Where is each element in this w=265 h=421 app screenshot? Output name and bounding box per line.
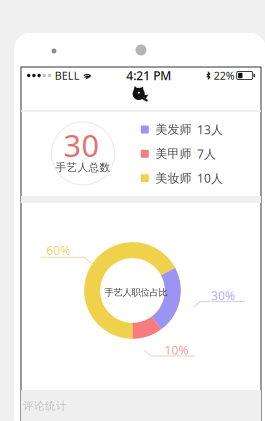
- staticText: 手艺人总数: [55, 161, 110, 174]
- staticText: 30: [63, 125, 99, 165]
- staticText: 13人: [197, 121, 223, 137]
- staticText: 60%: [46, 242, 70, 258]
- staticText: 22%: [214, 68, 235, 83]
- button[interactable]: Logo: [125, 80, 154, 109]
- button[interactable]: 评论统计: [19, 396, 71, 415]
- staticText: 4:21 PM: [126, 67, 171, 83]
- staticText: 美妆师: [155, 171, 191, 185]
- staticText: 30%: [211, 288, 235, 304]
- staticText: BELL: [55, 68, 80, 83]
- staticText: 美发师: [155, 122, 191, 137]
- staticText: 手艺人职位占比: [104, 287, 167, 298]
- staticText: 评论统计: [23, 399, 67, 412]
- staticText: 7人: [197, 146, 216, 162]
- staticText: 10人: [197, 170, 223, 186]
- staticText: 10%: [164, 342, 188, 358]
- staticText: 美甲师: [155, 146, 191, 161]
